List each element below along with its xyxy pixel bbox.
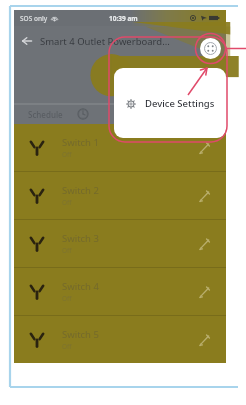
- staticText: Switch 2: [62, 184, 99, 197]
- staticText: Off: [62, 294, 72, 303]
- staticText: Schedule: [28, 109, 63, 120]
- staticText: Smart 4 Outlet Powerboard...: [40, 35, 170, 48]
- button[interactable]: Edit Switch 1: [194, 138, 214, 158]
- button[interactable]: Switch 4: [14, 268, 226, 315]
- staticText: Switch 4: [62, 280, 99, 293]
- staticText: Switch 5: [62, 328, 99, 341]
- staticText: 10:39 am: [109, 14, 138, 23]
- button[interactable]: Switch 3: [14, 220, 226, 267]
- button[interactable]: Switch 1: [14, 124, 226, 171]
- staticText: Off: [62, 342, 72, 351]
- button[interactable]: Schedule: [28, 104, 226, 124]
- staticText: Device Settings: [145, 97, 215, 110]
- button[interactable]: Device Settings: [114, 68, 226, 138]
- staticText: Off: [62, 246, 72, 255]
- staticText: SOS only: [20, 14, 48, 23]
- button[interactable]: Switch 2: [14, 172, 226, 219]
- staticText: Switch 1: [62, 136, 99, 149]
- button[interactable]: Edit Switch 3: [194, 234, 214, 254]
- button[interactable]: Edit Switch 4: [194, 282, 214, 302]
- staticText: Off: [62, 150, 72, 159]
- button[interactable]: Edit Switch 5: [194, 330, 214, 350]
- button[interactable]: Switch 5: [14, 316, 226, 363]
- button[interactable]: Back: [14, 28, 40, 54]
- button[interactable]: More options: [200, 38, 221, 59]
- staticText: Switch 3: [62, 232, 99, 245]
- staticText: Off: [62, 198, 72, 207]
- button[interactable]: Edit Switch 2: [194, 186, 214, 206]
